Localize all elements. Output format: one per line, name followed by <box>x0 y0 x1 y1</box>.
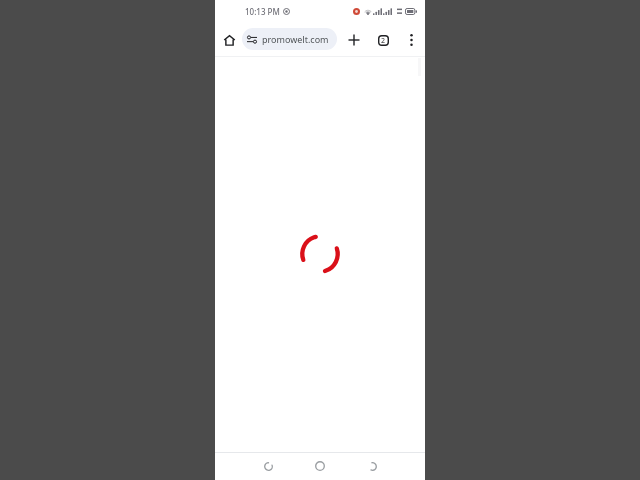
button[interactable]: Switch tabs <box>372 29 394 51</box>
button[interactable]: Home <box>308 454 332 478</box>
button[interactable]: Home <box>218 29 240 51</box>
button[interactable]: New tab <box>343 29 365 51</box>
button[interactable]: Back <box>256 454 280 478</box>
button[interactable]: promowelt.com <box>242 28 337 50</box>
button[interactable]: Recent apps <box>360 454 384 478</box>
staticText: 2 <box>381 36 386 46</box>
staticText: 10:13 PM <box>245 6 280 17</box>
staticText: promowelt.com <box>262 33 329 45</box>
button[interactable]: More options <box>400 29 422 51</box>
